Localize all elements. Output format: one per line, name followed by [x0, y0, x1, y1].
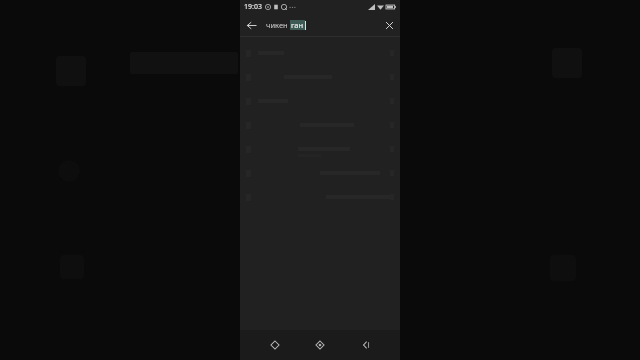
button[interactable]: Home [309, 334, 331, 356]
staticText: 19:03 [244, 2, 262, 12]
staticText: ган [291, 20, 304, 30]
button[interactable]: Back [240, 14, 262, 36]
button[interactable]: Recents [264, 334, 286, 356]
button[interactable]: Clear [378, 14, 400, 36]
button[interactable]: Back [355, 334, 377, 356]
button[interactable]: чикен [262, 20, 378, 30]
staticText: чикен [266, 20, 290, 30]
